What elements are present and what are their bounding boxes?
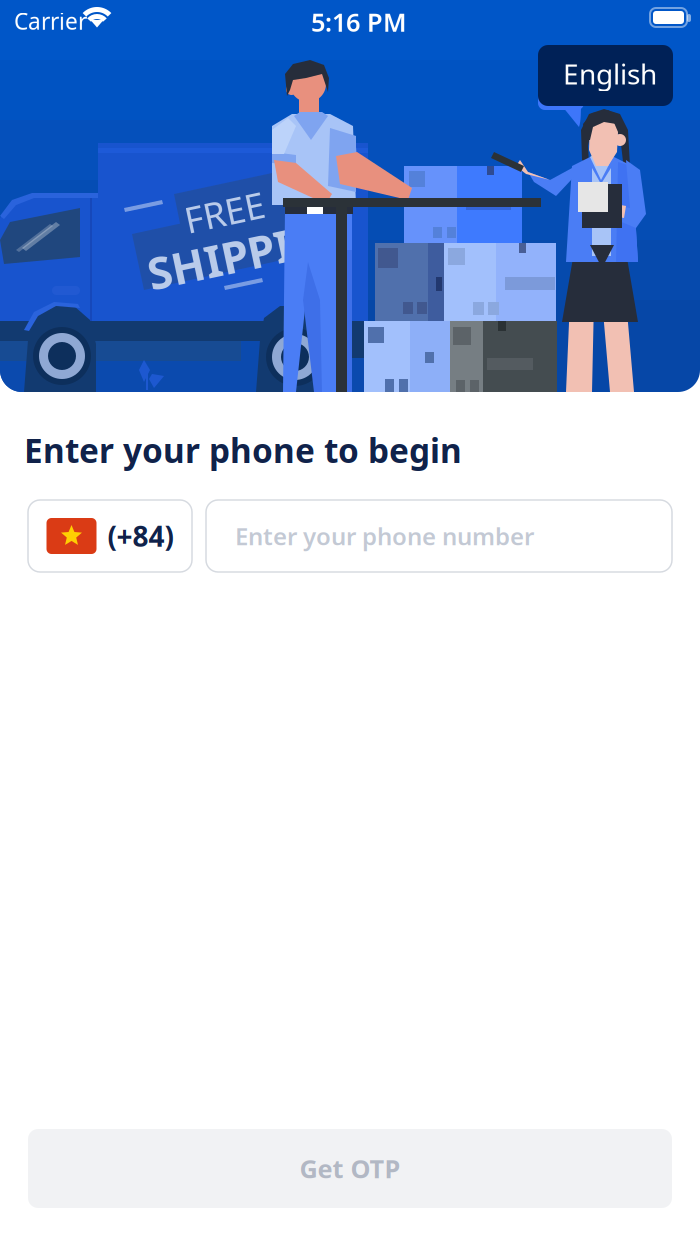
staticText: Enter your phone number xyxy=(235,520,534,552)
button[interactable]: Get OTP xyxy=(28,1129,672,1208)
button[interactable]: Enter your phone number xyxy=(206,500,672,572)
button[interactable]: (+84) xyxy=(28,500,192,572)
staticText: Carrier xyxy=(14,6,87,36)
staticText: SHIPPIN xyxy=(146,226,328,284)
staticText: FREE xyxy=(184,188,265,236)
staticText: Enter your phone to begin xyxy=(24,428,462,472)
staticText: (+84) xyxy=(107,517,173,555)
staticText: Get OTP xyxy=(299,1152,400,1185)
staticText: English xyxy=(563,55,657,92)
staticText: 5:16 PM xyxy=(311,5,407,39)
